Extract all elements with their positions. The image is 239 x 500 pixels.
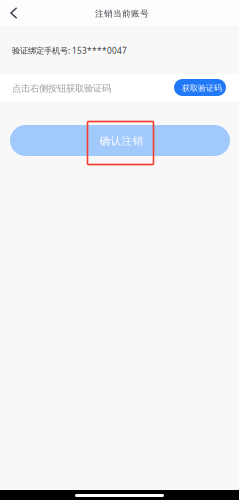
staticText: 验证绑定手机号: 153****0047: [12, 45, 127, 56]
staticText: 点击右侧按钮获取验证码: [12, 83, 111, 94]
button[interactable]: Back: [0, 0, 25, 26]
staticText: 注销当前账号: [95, 8, 149, 19]
staticText: 确认注销: [99, 134, 143, 148]
button[interactable]: 确认注销: [10, 125, 230, 156]
staticText: 获取验证码: [182, 83, 222, 93]
button[interactable]: 获取验证码: [174, 79, 226, 96]
